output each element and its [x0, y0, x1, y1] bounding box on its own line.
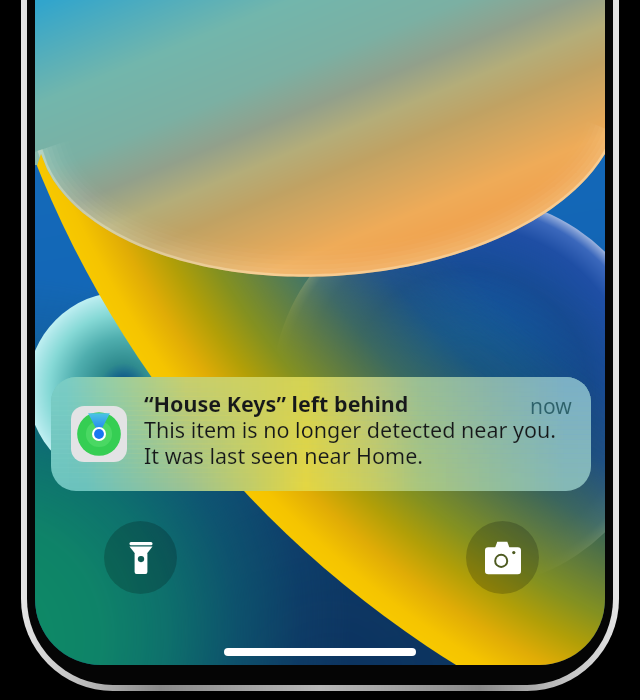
staticText: “House Keys” left behind — [144, 389, 409, 418]
button[interactable]: Flashlight — [104, 521, 177, 594]
button[interactable]: “House Keys” left behind — [51, 377, 591, 491]
staticText: This item is no longer detected near you… — [144, 415, 557, 444]
staticText: now — [530, 392, 572, 421]
staticText: It was last seen near Home. — [144, 441, 424, 470]
button[interactable]: Camera — [466, 521, 539, 594]
